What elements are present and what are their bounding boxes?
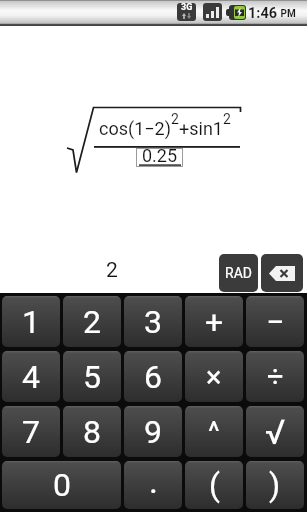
- staticText: 4: [22, 358, 40, 396]
- staticText: 3G: [181, 3, 193, 13]
- button[interactable]: RAD: [219, 254, 258, 292]
- button[interactable]: .: [124, 461, 182, 509]
- staticText: 3: [144, 303, 162, 341]
- staticText: 2: [171, 111, 179, 127]
- staticText: PM: [278, 8, 296, 20]
- button[interactable]: 3: [124, 296, 182, 347]
- button[interactable]: 5: [63, 351, 121, 402]
- staticText: 7: [22, 413, 40, 451]
- staticText: +sin1: [179, 118, 223, 139]
- staticText: +: [205, 303, 224, 341]
- button[interactable]: [261, 254, 303, 292]
- staticText: −: [266, 303, 285, 341]
- staticText: ^: [208, 415, 220, 448]
- button[interactable]: 0: [2, 461, 121, 509]
- staticText: 2: [83, 303, 101, 341]
- button[interactable]: −: [246, 296, 304, 347]
- staticText: cos(1−2): [99, 118, 171, 139]
- staticText: √: [265, 412, 286, 452]
- staticText: .: [149, 461, 158, 501]
- button[interactable]: 6: [124, 351, 182, 402]
- staticText: ×: [206, 360, 222, 394]
- staticText: 2: [223, 111, 231, 127]
- staticText: 2: [106, 258, 118, 283]
- button[interactable]: 4: [2, 351, 60, 402]
- button[interactable]: 9: [124, 406, 182, 457]
- staticText: 0: [53, 466, 71, 504]
- button[interactable]: ÷: [246, 351, 304, 402]
- staticText: 1: [22, 303, 40, 341]
- staticText: 5: [83, 358, 101, 396]
- button[interactable]: 7: [2, 406, 60, 457]
- button[interactable]: ×: [185, 351, 243, 402]
- button[interactable]: 1: [2, 296, 60, 347]
- button[interactable]: √: [246, 406, 304, 457]
- staticText: ÷: [267, 360, 284, 394]
- staticText: 9: [144, 413, 162, 451]
- button[interactable]: ): [246, 461, 304, 509]
- staticText: 8: [83, 413, 101, 451]
- staticText: 6: [144, 358, 162, 396]
- button[interactable]: 2: [63, 296, 121, 347]
- staticText: ): [269, 466, 281, 504]
- staticText: 1:46: [248, 5, 278, 22]
- staticText: 0.25: [142, 145, 178, 164]
- button[interactable]: ^: [185, 406, 243, 457]
- button[interactable]: +: [185, 296, 243, 347]
- button[interactable]: 8: [63, 406, 121, 457]
- staticText: RAD: [225, 265, 252, 281]
- button[interactable]: (: [185, 461, 243, 509]
- staticText: (: [209, 466, 220, 504]
